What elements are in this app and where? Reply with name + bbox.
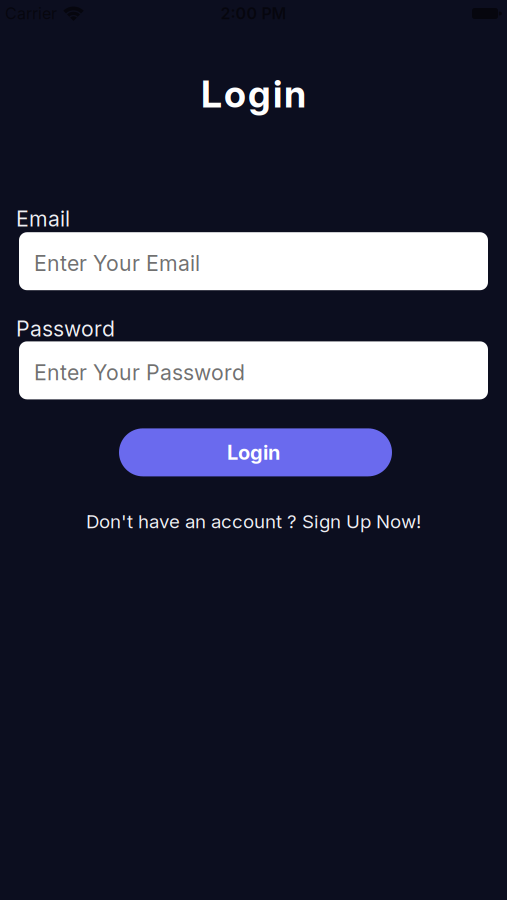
staticText: Enter Your Password	[34, 360, 245, 385]
staticText: Enter Your Email	[34, 251, 200, 276]
button[interactable]: Don't have an account ? Sign Up Now!	[86, 510, 421, 532]
staticText: Enter Your Password	[19, 357, 237, 384]
staticText: Login	[227, 441, 280, 464]
textField[interactable]: Enter Your Password	[19, 357, 488, 384]
staticText: Enter Your Email	[19, 248, 190, 274]
textField[interactable]: Enter Your Email	[19, 248, 488, 274]
staticText: Carrier	[5, 4, 57, 23]
staticText: Login	[201, 72, 306, 116]
staticText: Password	[16, 316, 115, 341]
staticText: Email	[16, 206, 70, 231]
button[interactable]: Login	[117, 428, 390, 476]
staticText: 2:00 PM	[220, 4, 286, 23]
staticText: Don't have an account ? Sign Up Now!	[86, 510, 421, 532]
